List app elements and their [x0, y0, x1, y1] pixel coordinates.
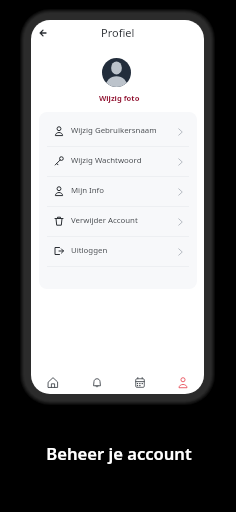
button[interactable]: Wijzig Gebruikersnaam [39, 117, 197, 146]
button[interactable]: Calendar [118, 368, 161, 394]
staticText: Verwijder Account [71, 215, 138, 226]
staticText: Profiel [101, 25, 135, 40]
button[interactable]: Profile photo [102, 58, 131, 87]
button[interactable]: Verwijder Account [39, 207, 197, 236]
button[interactable]: Profile [161, 368, 204, 394]
button[interactable]: Wijzig Wachtwoord [39, 147, 197, 176]
button[interactable]: Notifications [75, 368, 118, 394]
staticText: Wijzig Gebruikersnaam [71, 125, 157, 136]
button[interactable]: Back [31, 20, 56, 46]
staticText: Mijn Info [71, 185, 104, 196]
button[interactable]: Mijn Info [39, 177, 197, 206]
button[interactable]: Wijzig foto [95, 91, 144, 105]
staticText: Wijzig foto [99, 93, 140, 103]
button[interactable]: Home [31, 368, 75, 394]
staticText: Wijzig Wachtwoord [71, 155, 142, 166]
staticText: Uitloggen [71, 245, 108, 256]
button[interactable]: Uitloggen [39, 237, 197, 266]
staticText: Beheer je account [46, 442, 192, 465]
